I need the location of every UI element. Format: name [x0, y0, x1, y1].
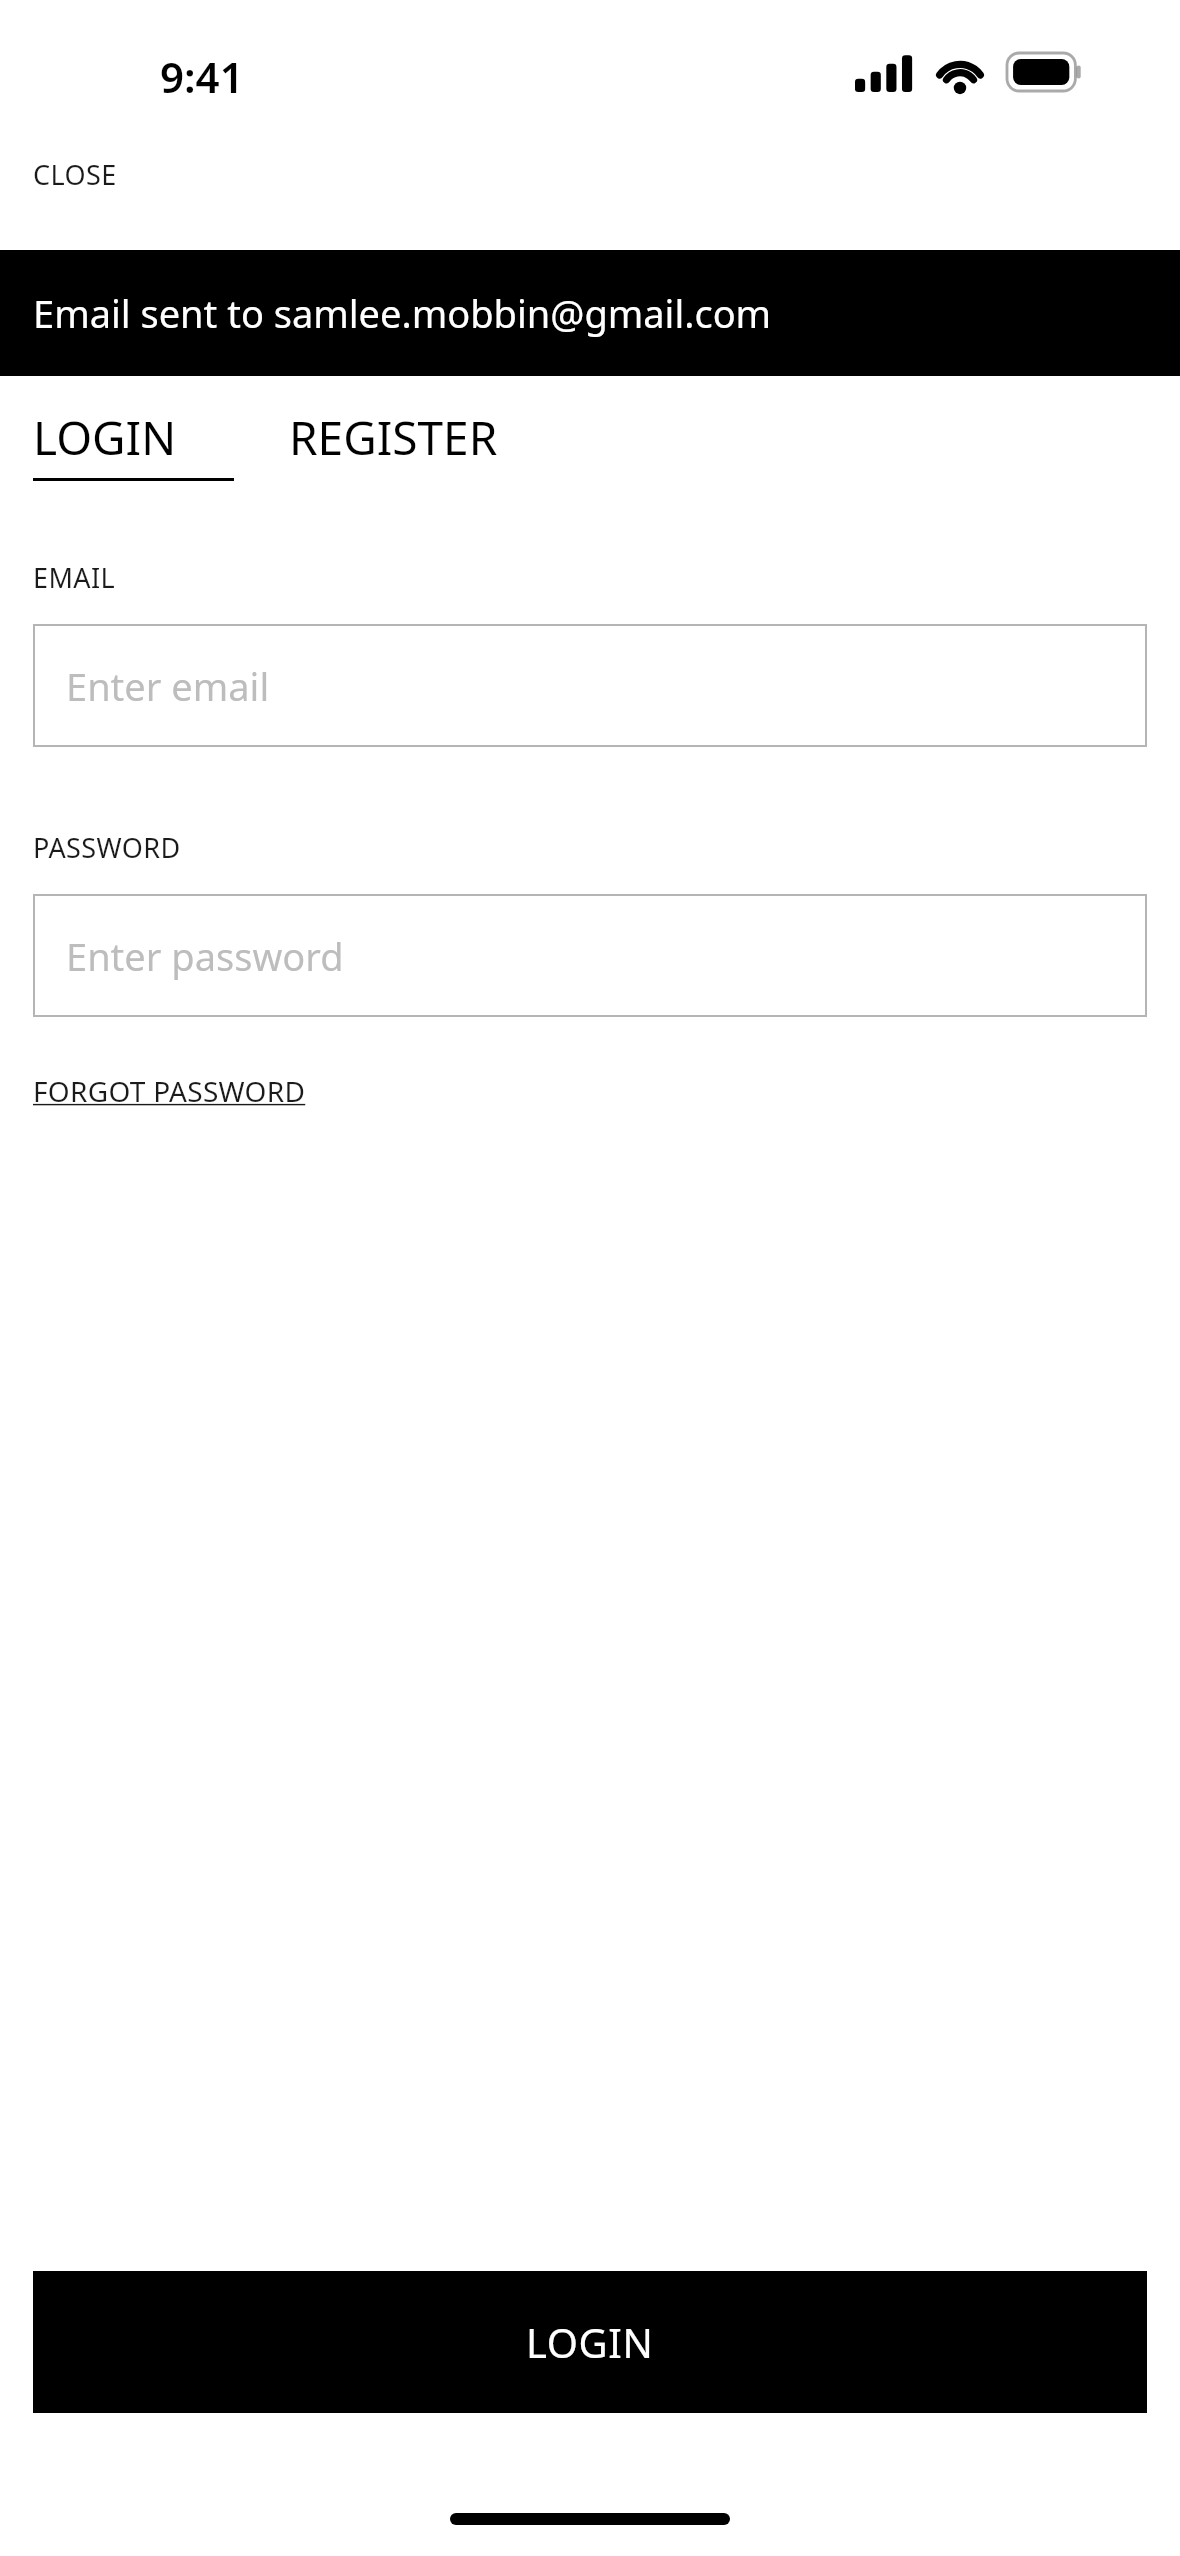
button[interactable]: FORGOT PASSWORD: [33, 1072, 306, 1110]
staticText: Email sent to samlee.mobbin@gmail.com: [33, 287, 772, 339]
button[interactable]: Enter email: [33, 624, 1147, 747]
staticText: LOGIN: [526, 2315, 654, 2369]
button[interactable]: Enter password: [33, 894, 1147, 1017]
staticText: PASSWORD: [33, 829, 181, 866]
button[interactable]: CLOSE: [0, 148, 141, 205]
staticText: Enter password: [66, 930, 344, 982]
staticText: Enter email: [66, 660, 270, 712]
staticText: CLOSE: [33, 156, 117, 193]
staticText: 9:41: [160, 48, 244, 105]
staticText: FORGOT PASSWORD: [33, 1072, 306, 1110]
staticText: LOGIN: [33, 406, 177, 469]
staticText: EMAIL: [33, 559, 116, 596]
button[interactable]: LOGIN: [33, 2271, 1147, 2413]
staticText: REGISTER: [289, 406, 498, 469]
button[interactable]: REGISTER: [289, 406, 498, 469]
button[interactable]: LOGIN: [33, 406, 234, 481]
